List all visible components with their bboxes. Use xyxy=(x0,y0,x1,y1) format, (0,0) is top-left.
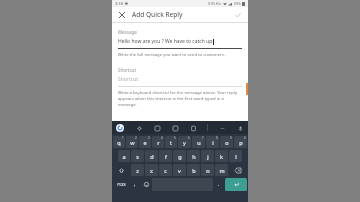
button[interactable]: g xyxy=(173,150,186,162)
staticText: e xyxy=(143,139,147,146)
button[interactable]: u xyxy=(192,136,205,148)
button[interactable]: Enter xyxy=(225,178,247,191)
staticText: 0 xyxy=(244,136,246,140)
staticText: Write the full message you want to send … xyxy=(118,52,225,58)
staticText: Hello how are you ? We have to catch up xyxy=(118,38,213,45)
staticText: y xyxy=(183,139,186,146)
button[interactable]: GIF xyxy=(171,124,179,132)
button[interactable]: w xyxy=(126,136,138,148)
staticText: r xyxy=(157,139,160,146)
button[interactable]: Shift xyxy=(113,164,130,176)
staticText: , xyxy=(134,181,136,188)
staticText: 5 xyxy=(174,136,176,140)
staticText: 4 xyxy=(161,136,163,140)
staticText: 0.05 K/s xyxy=(208,1,221,6)
button[interactable]: m xyxy=(215,164,228,176)
button[interactable]: Hello how are you ? We have to catch up xyxy=(118,38,242,45)
staticText: Shortcut xyxy=(118,76,139,83)
staticText: m xyxy=(219,167,225,174)
button[interactable]: Emoji xyxy=(141,178,151,191)
staticText: Add Quick Reply xyxy=(132,10,183,19)
button[interactable]: t xyxy=(165,136,177,148)
staticText: f xyxy=(165,153,167,160)
button[interactable]: c xyxy=(159,164,172,176)
button[interactable]: b xyxy=(187,164,200,176)
button[interactable]: v xyxy=(173,164,186,176)
button[interactable]: p xyxy=(234,136,247,148)
staticText: s xyxy=(136,153,139,160)
staticText: v xyxy=(178,167,181,174)
button[interactable]: j xyxy=(201,150,214,162)
staticText: 69% xyxy=(234,1,241,6)
staticText: b xyxy=(192,167,196,174)
staticText: d xyxy=(150,153,154,160)
button[interactable]: Shortcut xyxy=(118,76,242,83)
button[interactable]: l xyxy=(229,150,242,162)
staticText: Shortcut xyxy=(118,67,137,73)
staticText: 8 xyxy=(216,136,218,140)
button[interactable]: n xyxy=(201,164,214,176)
button[interactable]: r xyxy=(152,136,164,148)
button[interactable]: . xyxy=(214,178,224,191)
staticText: i xyxy=(212,139,214,146)
staticText: 6 xyxy=(188,136,190,140)
button[interactable]: s xyxy=(131,150,144,162)
button[interactable]: o xyxy=(220,136,233,148)
button[interactable]: a xyxy=(118,150,130,162)
button[interactable]: , xyxy=(130,178,140,191)
button[interactable]: k xyxy=(215,150,228,162)
button[interactable]: Close xyxy=(117,10,127,20)
button[interactable]: More options xyxy=(218,124,226,132)
button[interactable]: x xyxy=(145,164,158,176)
staticText: n xyxy=(206,167,210,174)
button[interactable]: Google search xyxy=(116,124,124,132)
button[interactable]: Save xyxy=(233,10,243,20)
button[interactable]: h xyxy=(187,150,200,162)
staticText: a xyxy=(122,153,126,160)
button[interactable]: ?123 xyxy=(113,178,129,191)
staticText: 3 xyxy=(148,136,150,140)
staticText: 9 xyxy=(230,136,232,140)
button[interactable]: e xyxy=(139,136,151,148)
button[interactable]: z xyxy=(131,164,144,176)
staticText: z xyxy=(136,167,139,174)
button[interactable]: y xyxy=(178,136,191,148)
staticText: o xyxy=(225,139,229,146)
staticText: x xyxy=(150,167,153,174)
button[interactable]: f xyxy=(159,150,172,162)
staticText: ?123 xyxy=(117,182,126,187)
staticText: p xyxy=(239,139,243,146)
button[interactable]: Backspace xyxy=(229,164,247,176)
staticText: 3:38 xyxy=(115,1,123,6)
staticText: 2 xyxy=(135,136,137,140)
button[interactable]: d xyxy=(145,150,158,162)
staticText: 1 xyxy=(122,136,124,140)
button[interactable]: Clipboard xyxy=(189,124,197,132)
staticText: t xyxy=(170,139,172,146)
button[interactable]: Stickers xyxy=(153,124,161,132)
staticText: c xyxy=(164,167,167,174)
staticText: w xyxy=(130,139,135,146)
staticText: . xyxy=(218,181,220,188)
button[interactable]: Voice input xyxy=(236,124,244,132)
staticText: g xyxy=(178,153,182,160)
staticText: q xyxy=(117,139,121,146)
staticText: Message xyxy=(118,29,137,35)
staticText: 7 xyxy=(202,136,204,140)
staticText: k xyxy=(220,153,223,160)
staticText: Write a keyboard shortcut for the messag… xyxy=(118,90,242,108)
button[interactable]: i xyxy=(206,136,219,148)
button[interactable]: Settings xyxy=(135,124,143,132)
button[interactable]: q xyxy=(113,136,125,148)
staticText: h xyxy=(192,153,196,160)
staticText: l xyxy=(235,153,237,160)
staticText: u xyxy=(197,139,201,146)
staticText: j xyxy=(207,153,209,160)
